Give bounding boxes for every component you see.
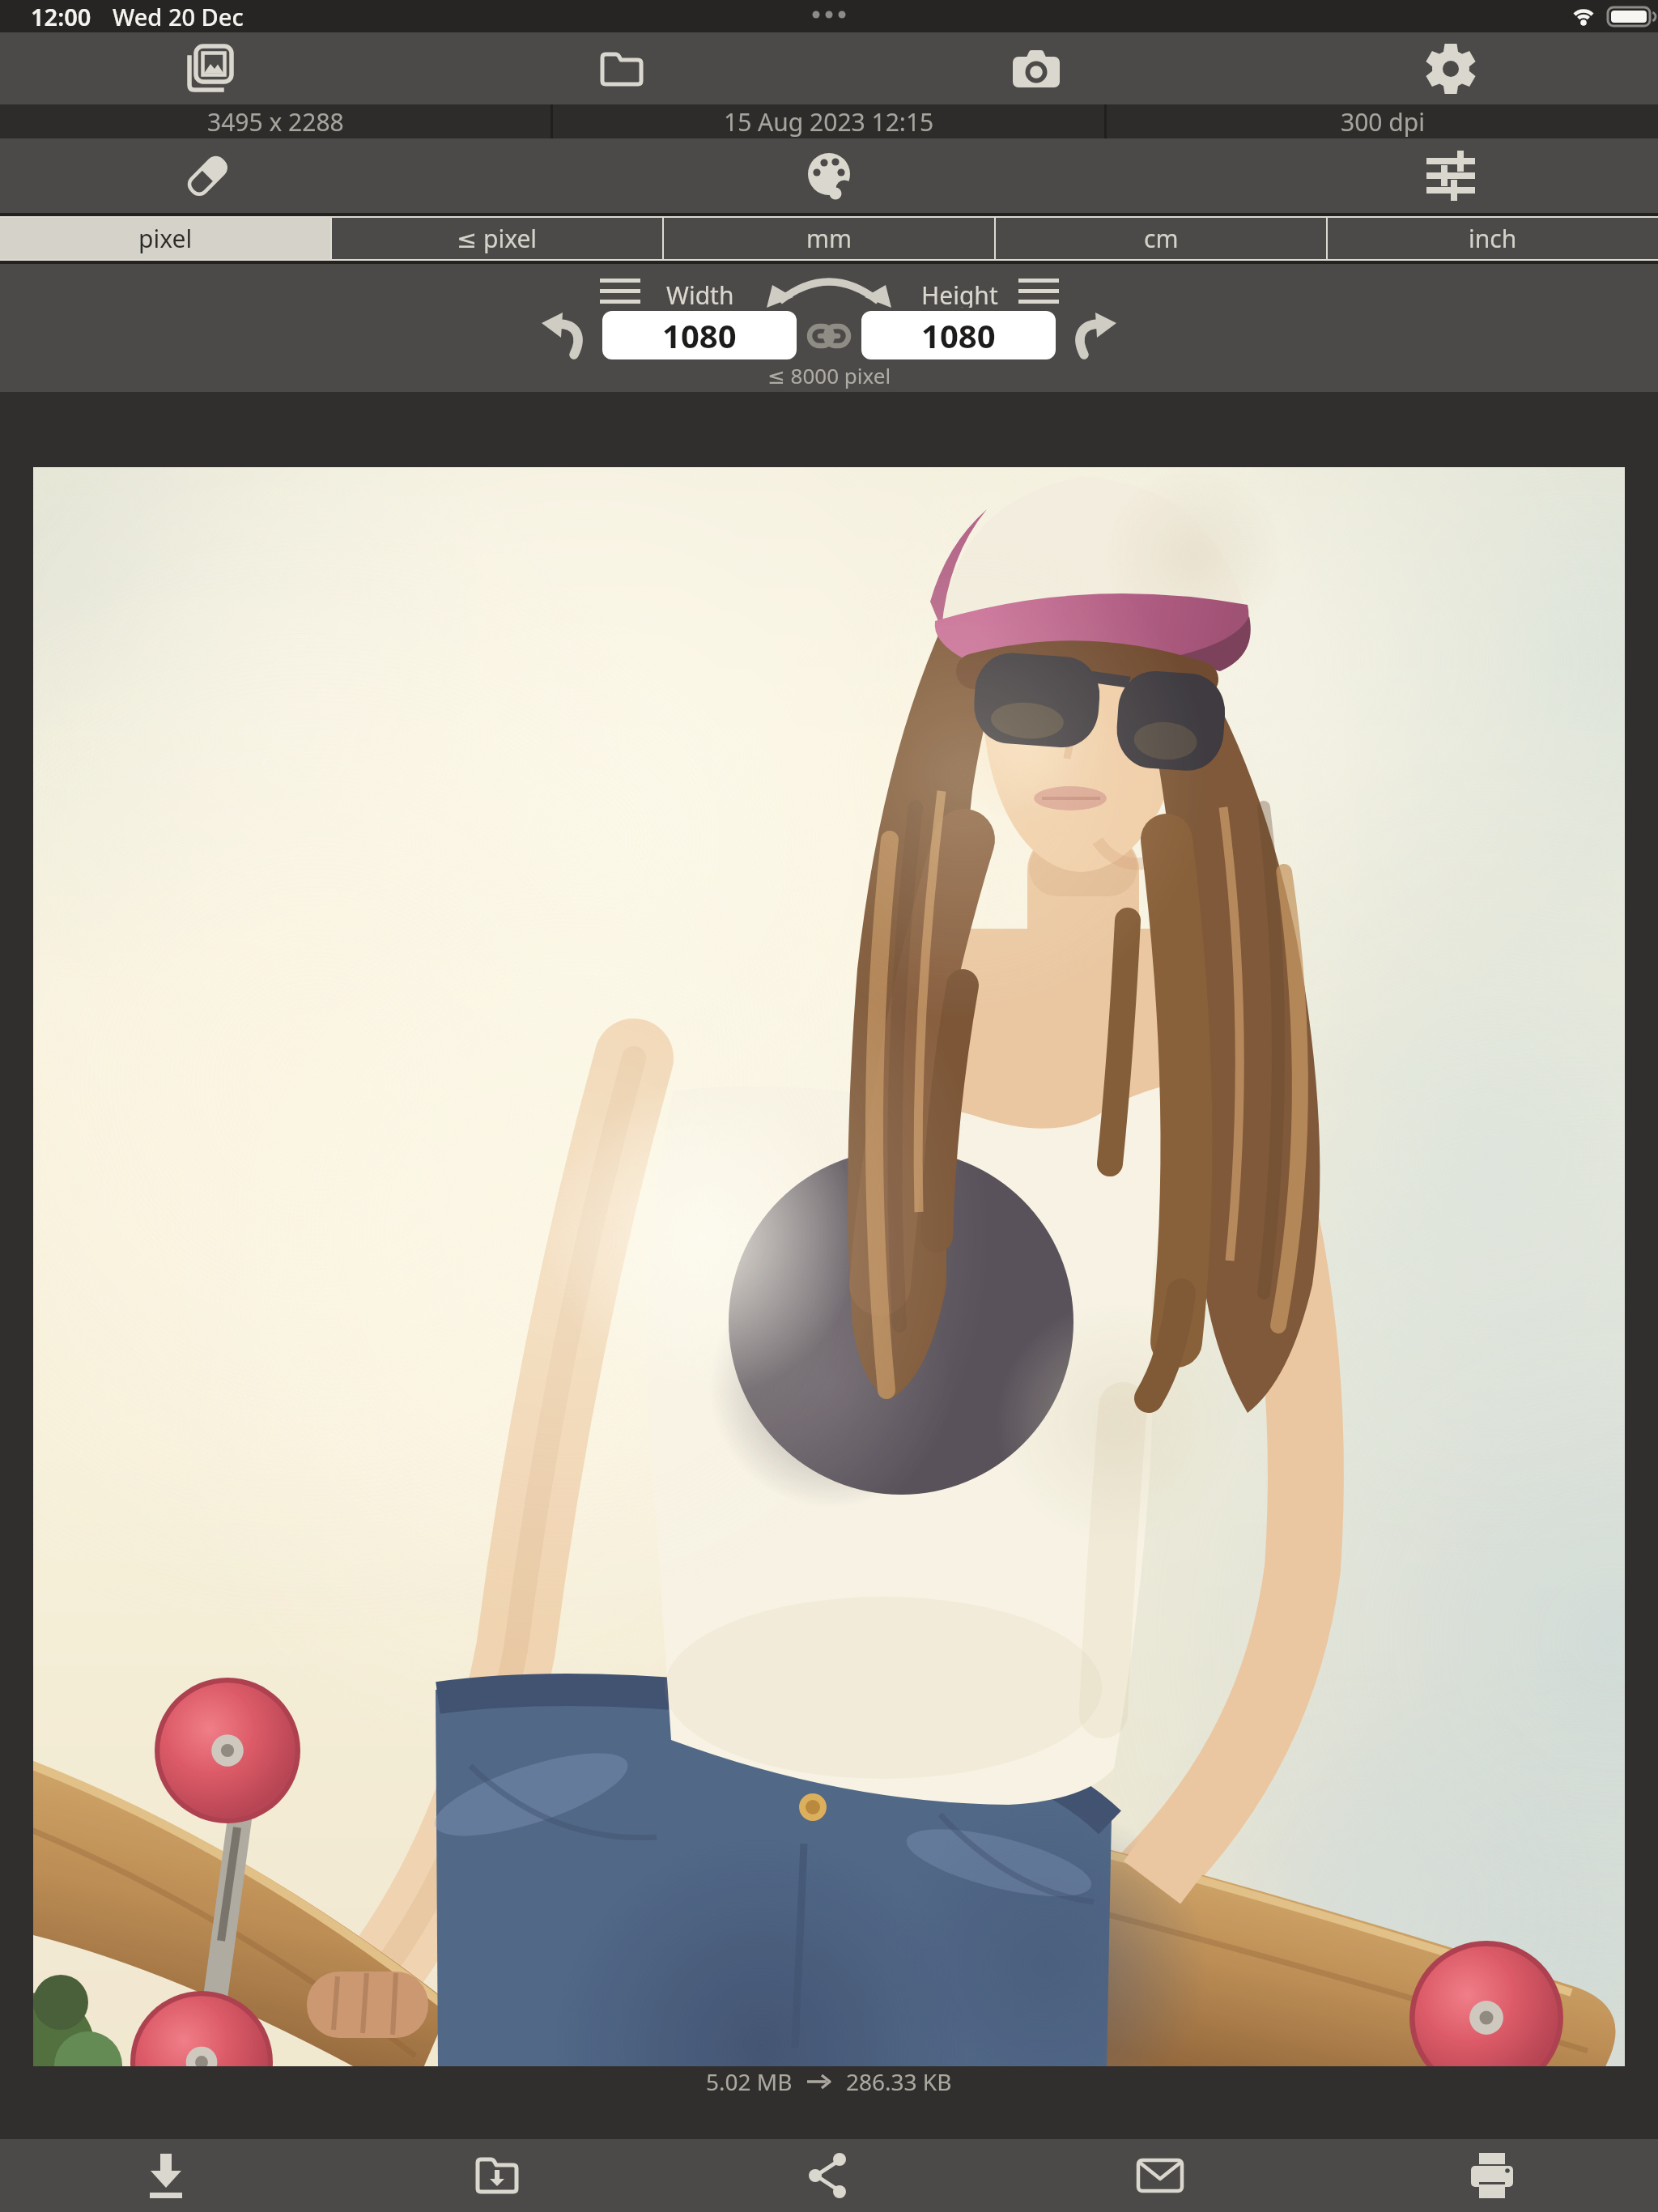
staticText: ≤ 8000 pixel	[767, 361, 891, 389]
staticText: Width	[666, 279, 734, 308]
button[interactable]	[808, 322, 850, 350]
button[interactable]: mm	[664, 218, 994, 259]
staticText: 1080	[921, 313, 996, 357]
button[interactable]	[1326, 2139, 1658, 2212]
button[interactable]	[994, 2139, 1326, 2212]
button[interactable]	[1072, 311, 1117, 361]
button[interactable]	[1243, 138, 1658, 213]
button[interactable]	[0, 32, 414, 104]
button[interactable]	[0, 2139, 331, 2212]
staticText: Wed 20 Dec	[113, 1, 244, 32]
staticText: ≤ pixel	[457, 222, 538, 255]
button[interactable]	[414, 138, 1243, 213]
button[interactable]: 300 dpi	[1107, 104, 1658, 138]
button[interactable]	[0, 138, 414, 213]
button[interactable]: 3495 x 2288	[0, 104, 551, 138]
button[interactable]: 15 Aug 2023 12:15	[553, 104, 1104, 138]
staticText: inch	[1469, 222, 1517, 255]
button[interactable]	[541, 311, 586, 361]
staticText: 15 Aug 2023 12:15	[724, 105, 934, 138]
button[interactable]: pixel	[0, 218, 330, 259]
button[interactable]	[662, 2139, 994, 2212]
button[interactable]: ≤ pixel	[332, 218, 662, 259]
staticText: Height	[921, 279, 998, 308]
button[interactable]: 1080	[861, 311, 1056, 359]
button[interactable]	[600, 279, 640, 304]
button[interactable]: cm	[996, 218, 1326, 259]
button[interactable]	[1018, 279, 1059, 304]
staticText: 12:00	[31, 1, 91, 32]
staticText: cm	[1144, 222, 1179, 255]
button[interactable]: 1080	[602, 311, 797, 359]
staticText: 3495 x 2288	[207, 105, 344, 138]
button[interactable]	[1243, 32, 1658, 104]
staticText: 286.33 KB	[846, 2066, 952, 2097]
button[interactable]	[414, 32, 829, 104]
staticText: pixel	[138, 222, 193, 255]
staticText: 1080	[662, 313, 737, 357]
button[interactable]	[829, 32, 1243, 104]
button[interactable]	[760, 270, 898, 309]
button[interactable]	[331, 2139, 662, 2212]
staticText: 300 dpi	[1341, 105, 1425, 138]
staticText: 5.02 MB	[706, 2066, 793, 2097]
button[interactable]: inch	[1328, 218, 1658, 259]
staticText: mm	[806, 222, 852, 255]
